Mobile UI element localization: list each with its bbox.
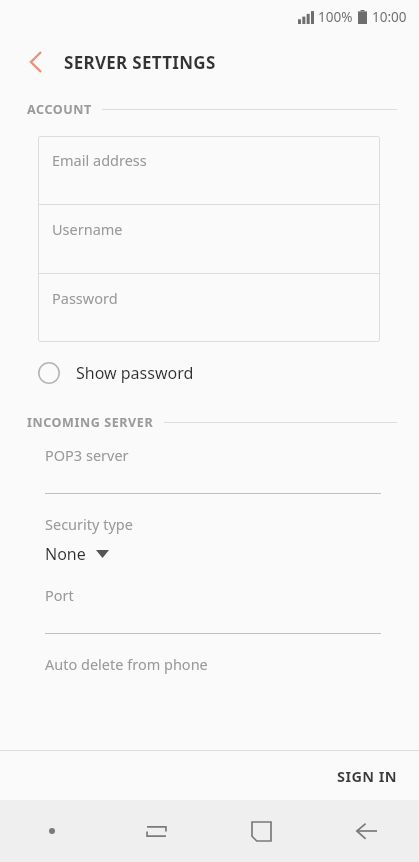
staticText: INCOMING SERVER [27, 414, 154, 431]
staticText: Port [45, 585, 74, 605]
button[interactable]: Home [209, 800, 314, 862]
button[interactable]: Back [314, 800, 419, 862]
button[interactable]: Email address [38, 136, 380, 204]
staticText: Auto delete from phone [45, 654, 208, 674]
staticText: Show password [76, 362, 194, 384]
staticText: Username [52, 219, 123, 239]
staticText: 100% [318, 8, 353, 26]
button[interactable]: SIGN IN [315, 754, 419, 798]
button[interactable]: Username [38, 205, 380, 273]
staticText: None [45, 543, 86, 565]
staticText: SIGN IN [337, 766, 397, 786]
button[interactable]: Password [38, 274, 380, 342]
button[interactable]: POP3 server [45, 445, 381, 494]
staticText: Password [52, 288, 118, 308]
button[interactable]: Port [45, 585, 381, 634]
button[interactable]: Indicator [0, 800, 104, 862]
staticText: Email address [52, 150, 147, 170]
staticText: SERVER SETTINGS [64, 51, 216, 74]
staticText: Security type [45, 514, 133, 534]
button[interactable]: Back [14, 40, 58, 84]
button[interactable]: Recents [104, 800, 209, 862]
staticText: 10:00 [372, 8, 407, 26]
staticText: POP3 server [45, 445, 129, 465]
button[interactable]: Security type [45, 514, 381, 565]
button[interactable]: Show password [32, 356, 200, 390]
staticText: ACCOUNT [27, 101, 92, 118]
